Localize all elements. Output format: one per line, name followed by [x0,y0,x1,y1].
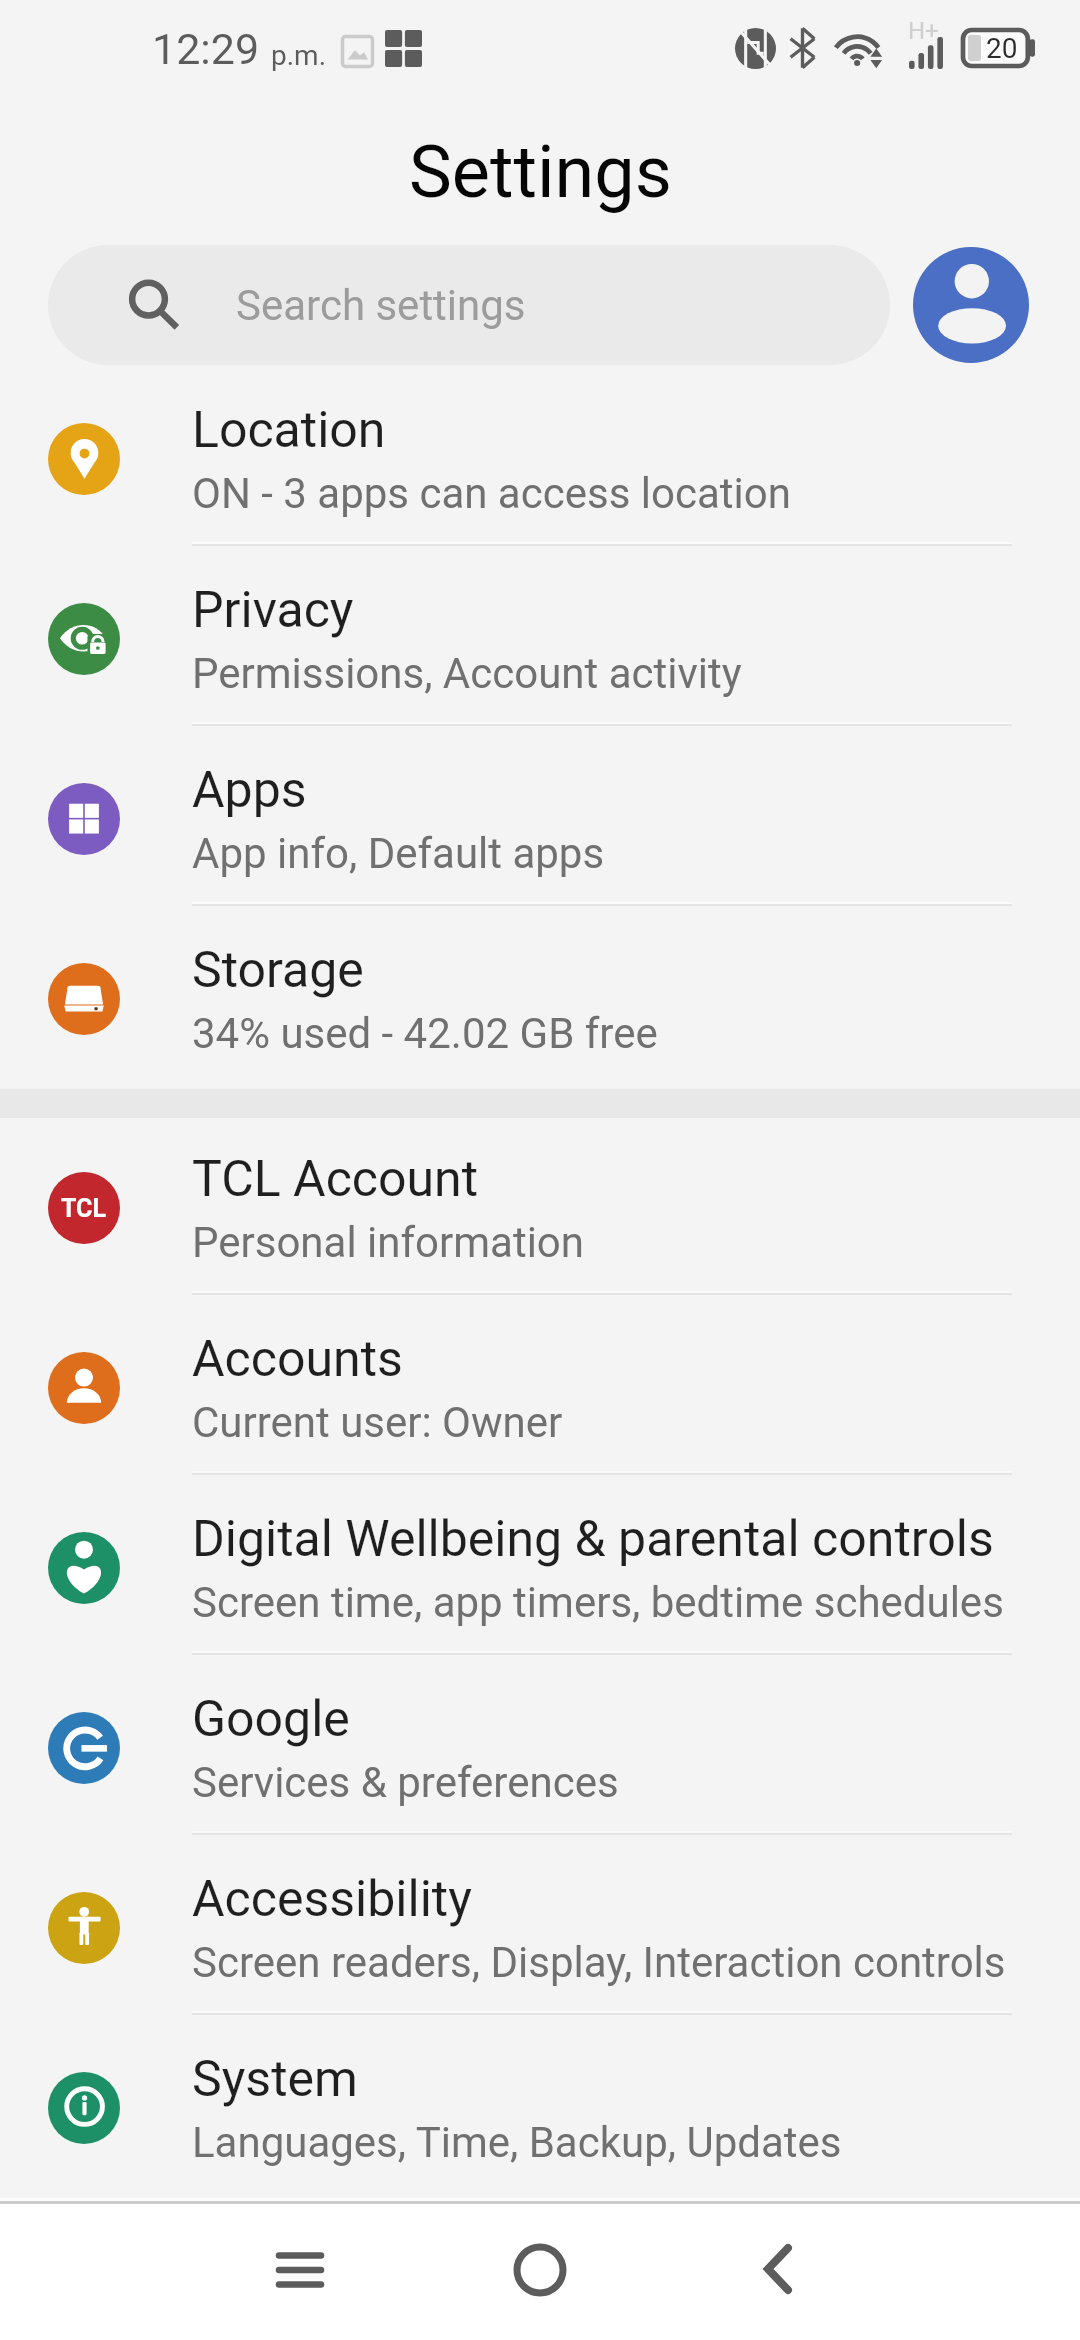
staticText: TCL [61,1194,107,1223]
staticText: Personal information [192,1218,585,1267]
button[interactable]: Recent apps [180,2204,420,2340]
staticText: Search settings [236,281,526,330]
staticText: Privacy [192,581,354,640]
button[interactable]: System [0,2018,1080,2198]
button[interactable]: Search settings [48,245,890,365]
staticText: H+ [908,17,939,45]
button[interactable]: Digital Wellbeing & parental controls [0,1478,1080,1658]
button[interactable]: Location [0,369,1080,549]
staticText: Current user: Owner [192,1398,563,1447]
staticText: Accounts [192,1330,403,1389]
staticText: TCL Account [192,1150,479,1209]
button[interactable]: Accounts [0,1298,1080,1478]
staticText: Permissions, Account activity [192,649,742,698]
staticText: Services & preferences [192,1758,619,1807]
button[interactable]: Home [420,2204,660,2340]
staticText: ON - 3 apps can access location [192,469,791,518]
staticText: Storage [192,941,364,1000]
button[interactable]: Privacy [0,549,1080,729]
staticText: App info, Default apps [192,829,605,878]
staticText: 34% used - 42.02 GB free [192,1009,658,1058]
staticText: Accessibility [192,1870,472,1929]
button[interactable]: Apps [0,729,1080,909]
staticText: Digital Wellbeing & parental controls [192,1510,994,1569]
button[interactable]: Storage [0,909,1080,1089]
staticText: Location [192,401,386,460]
button[interactable]: TCL [0,1118,1080,1298]
staticText: Languages, Time, Backup, Updates [192,2118,842,2167]
staticText: System [192,2050,358,2109]
button[interactable]: Account [913,247,1029,363]
staticText: 20 [986,32,1018,65]
button[interactable]: Google [0,1658,1080,1838]
staticText: 12:29 [152,24,260,74]
staticText: Screen readers, Display, Interaction con… [192,1938,1006,1987]
staticText: p.m. [271,39,327,72]
staticText: Google [192,1690,350,1749]
button[interactable]: Accessibility [0,1838,1080,2018]
staticText: Apps [192,761,307,820]
staticText: Settings [409,130,672,214]
button[interactable]: Back [658,2204,898,2340]
staticText: Screen time, app timers, bedtime schedul… [192,1578,1004,1627]
